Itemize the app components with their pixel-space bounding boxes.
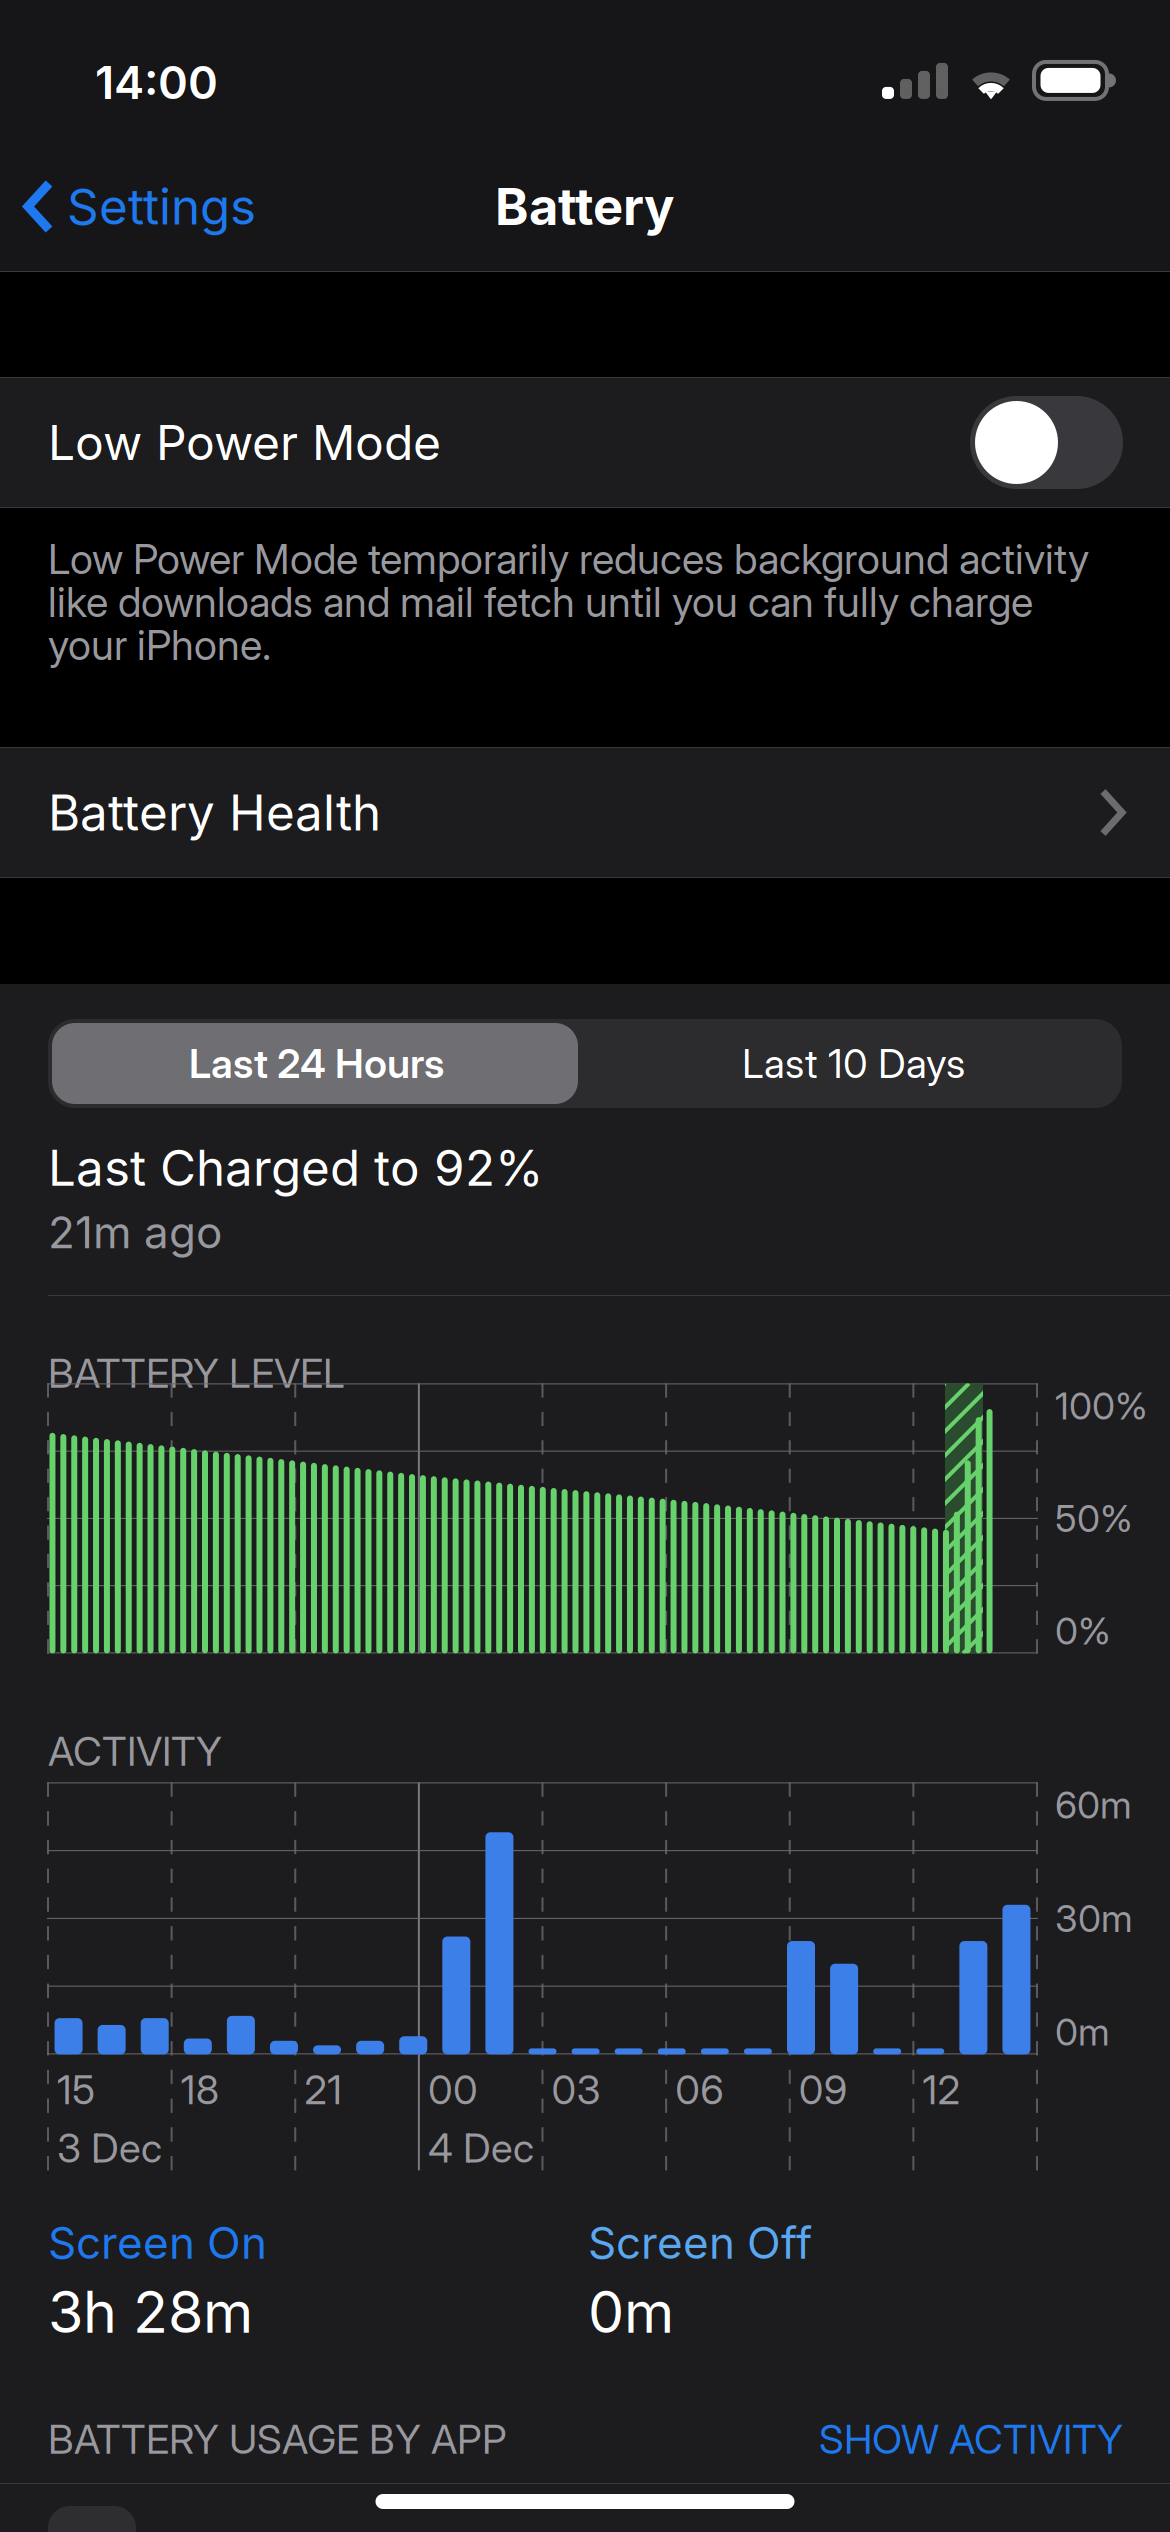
staticText: 21	[304, 2065, 342, 2114]
staticText: 100%	[1055, 1383, 1148, 1429]
staticText: BATTERY USAGE BY APP	[48, 2415, 507, 2463]
staticText: 15	[57, 2065, 95, 2114]
staticText: 4 Dec	[428, 2124, 534, 2172]
button[interactable]: Last 10 Days	[585, 1019, 1122, 1108]
button[interactable]: Last 24 Hours	[48, 1019, 585, 1108]
staticText: Screen Off	[588, 2216, 812, 2269]
staticText: 0m	[588, 2277, 674, 2347]
staticText: 3 Dec	[57, 2124, 162, 2172]
staticText: Settings	[67, 177, 256, 236]
staticText: Screen On	[48, 2216, 267, 2269]
staticText: 09	[799, 2065, 848, 2114]
staticText: Last Charged to 92%	[48, 1138, 543, 1198]
staticText: 03	[551, 2065, 600, 2114]
staticText: 06	[675, 2065, 724, 2114]
staticText: BATTERY LEVEL	[48, 1349, 345, 1397]
staticText: Low Power Mode temporarily reduces backg…	[48, 534, 1089, 670]
staticText: 21m ago	[48, 1206, 222, 1259]
button[interactable]: SHOW ACTIVITY	[819, 2415, 1123, 2463]
staticText: 18	[181, 2065, 219, 2114]
staticText: ACTIVITY	[48, 1727, 222, 1775]
staticText: 0%	[1055, 1608, 1111, 1653]
staticText: Last 10 Days	[742, 1039, 965, 1088]
staticText: 30m	[1055, 1896, 1133, 1941]
button[interactable]: Settings	[0, 161, 256, 252]
staticText: 00	[428, 2065, 478, 2114]
staticText: 3h 28m	[48, 2277, 253, 2347]
staticText: Last 24 Hours	[189, 1039, 444, 1088]
button[interactable]: Low Power Mode	[0, 377, 1170, 508]
button[interactable]: Battery Health	[0, 747, 1170, 878]
staticText: Battery	[495, 176, 675, 237]
staticText: 0m	[1055, 2009, 1110, 2054]
staticText: 14:00	[95, 55, 218, 110]
staticText: 50%	[1055, 1496, 1133, 1541]
staticText: SHOW ACTIVITY	[819, 2415, 1123, 2463]
staticText: Battery Health	[48, 783, 381, 842]
staticText: 60m	[1055, 1782, 1132, 1828]
staticText: 12	[922, 2065, 960, 2114]
staticText: Low Power Mode	[48, 413, 441, 472]
